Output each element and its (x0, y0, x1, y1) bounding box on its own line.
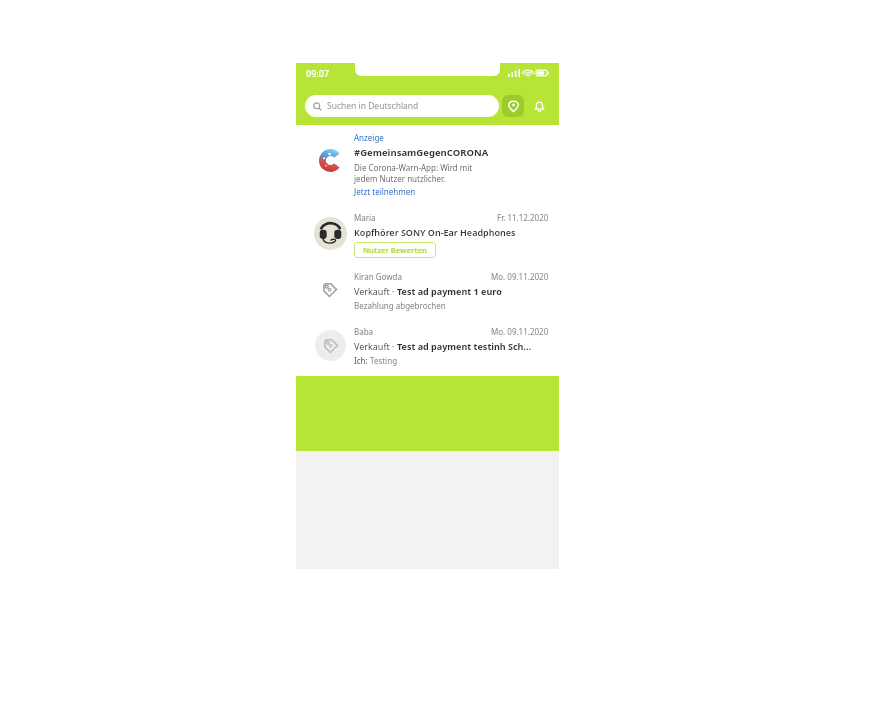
staticText: Maria (354, 212, 376, 223)
staticText: Jetzt teilnehmen (354, 186, 416, 197)
staticText: Verkauft · (354, 285, 397, 297)
button[interactable]: Ort wählen (502, 95, 524, 117)
staticText: Test ad payment testinh Sch… (397, 340, 532, 352)
staticText: Mo. 09.11.2020 (491, 271, 549, 282)
staticText: Testing (370, 355, 398, 366)
button[interactable]: Suchen in Deutschland (305, 95, 499, 117)
staticText: Suchen in Deutschland (327, 100, 419, 112)
staticText: Anzeige (354, 132, 384, 143)
button[interactable]: Nutzer Bewerten (354, 242, 436, 258)
button[interactable]: Benachrichtigungen (528, 95, 550, 117)
staticText: Ich: (354, 355, 370, 366)
staticText: Mo. 09.11.2020 (491, 326, 549, 337)
button[interactable]: Maria (296, 203, 559, 263)
staticText: Baba (354, 326, 374, 337)
staticText: Verkauft · (354, 340, 397, 352)
button[interactable]: Kiran Gowda (296, 263, 559, 318)
staticText: Test ad payment 1 euro (397, 285, 502, 297)
staticText: #GemeinsamGegenCORONA (354, 146, 489, 159)
staticText: Nutzer Bewerten (363, 245, 427, 255)
staticText: Bezahlung abgebrochen (354, 300, 446, 311)
staticText: 09:07 (306, 67, 330, 79)
staticText: Die Corona-Warn-App: Wird mit (354, 162, 473, 173)
staticText: Fr. 11.12.2020 (497, 212, 549, 223)
button[interactable]: Anzeige (296, 125, 559, 203)
staticText: Kiran Gowda (354, 271, 402, 282)
staticText: jedem Nutzer nutzlicher. (354, 173, 446, 184)
button[interactable]: Baba (296, 318, 559, 373)
staticText: Kopfhörer SONY On-Ear Headphones (354, 226, 516, 238)
